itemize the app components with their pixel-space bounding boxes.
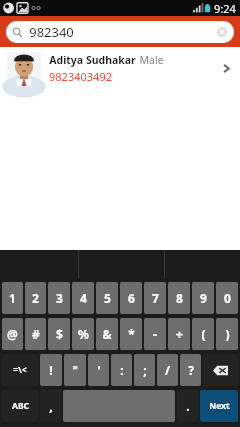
button[interactable]: ABC — [2, 390, 38, 422]
staticText: 5 — [104, 290, 111, 306]
staticText: 2 — [32, 290, 39, 306]
button[interactable]: 6 — [120, 282, 142, 314]
button[interactable]: Aditya Sudhakar — [0, 47, 240, 90]
staticText: ( — [201, 326, 206, 342]
button[interactable]: # — [25, 318, 46, 350]
staticText: 982340 — [29, 23, 74, 41]
staticText: , — [49, 398, 53, 414]
button[interactable]: @ — [2, 318, 23, 350]
staticText: / — [165, 362, 170, 378]
staticText: 0 — [224, 290, 231, 306]
button[interactable]: 5 — [96, 282, 118, 314]
button[interactable]: =\< — [2, 354, 38, 386]
button[interactable]: * — [120, 318, 142, 350]
staticText: ; — [143, 362, 147, 378]
button[interactable]: ; — [134, 354, 155, 386]
button[interactable]: & — [96, 318, 118, 350]
button[interactable]: ' — [88, 354, 109, 386]
staticText: 9:24 — [214, 1, 236, 16]
staticText: ? — [188, 362, 194, 378]
staticText: % — [78, 326, 89, 342]
staticText: Next — [209, 400, 230, 412]
staticText: 4 — [80, 290, 87, 306]
button[interactable]: + — [168, 318, 190, 350]
staticText: # — [32, 326, 40, 342]
button[interactable]: Search — [6, 21, 234, 43]
button[interactable]: 4 — [72, 282, 94, 314]
button[interactable]: , — [40, 390, 61, 422]
button[interactable]: ? — [180, 354, 201, 386]
button[interactable]: " — [64, 354, 86, 386]
button[interactable]: % — [72, 318, 94, 350]
button[interactable]: ! — [40, 354, 62, 386]
button[interactable]: 3 — [48, 282, 70, 314]
staticText: : — [120, 362, 124, 378]
staticText: ) — [225, 326, 230, 342]
button[interactable]: ( — [192, 318, 214, 350]
staticText: " — [72, 362, 78, 378]
staticText: ! — [49, 362, 53, 378]
button[interactable]: . — [177, 390, 198, 422]
button[interactable]: 2 — [25, 282, 46, 314]
button[interactable]: 1 — [2, 282, 23, 314]
staticText: Male — [139, 53, 164, 67]
staticText: 3 — [56, 290, 63, 306]
button[interactable]: 8 — [168, 282, 190, 314]
button[interactable]: 7 — [144, 282, 166, 314]
staticText: 9 — [200, 290, 207, 306]
button[interactable]: Backspace — [203, 354, 238, 386]
staticText: & — [102, 326, 112, 342]
staticText: . — [186, 398, 190, 414]
button[interactable]: Next — [200, 390, 238, 422]
staticText: Aditya Sudhakar — [49, 53, 136, 67]
button[interactable]: 9 — [192, 282, 214, 314]
button[interactable]: $ — [48, 318, 70, 350]
staticText: * — [128, 326, 135, 342]
staticText: 8 — [176, 290, 183, 306]
staticText: + — [176, 326, 183, 342]
staticText: 6 — [128, 290, 135, 306]
staticText: =\< — [13, 364, 27, 376]
button[interactable]: 0 — [216, 282, 238, 314]
staticText: 1 — [9, 290, 16, 306]
staticText: @ — [7, 326, 18, 342]
button[interactable]: / — [157, 354, 178, 386]
staticText: ' — [97, 362, 101, 378]
button[interactable]: Clear search — [213, 23, 231, 41]
button[interactable]: : — [111, 354, 132, 386]
button[interactable]: Open contact — [212, 47, 240, 90]
staticText: ABC — [12, 400, 29, 412]
staticText: 9823403492 — [49, 69, 112, 84]
staticText: - — [153, 326, 157, 342]
button[interactable]: - — [144, 318, 166, 350]
button[interactable]: ) — [216, 318, 238, 350]
other: Search — [12, 27, 23, 38]
staticText: 7 — [152, 290, 159, 306]
staticText: $ — [56, 326, 63, 342]
